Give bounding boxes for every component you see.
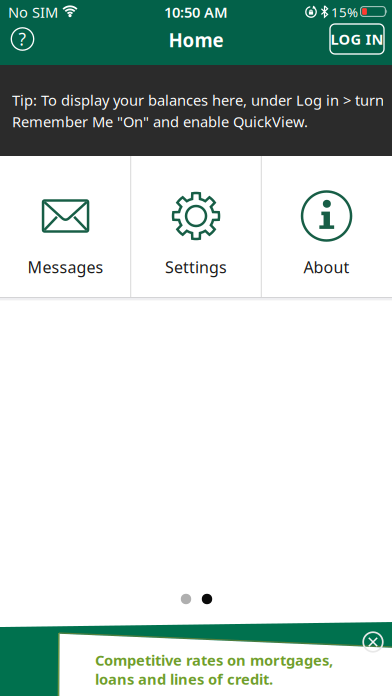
staticText: Competitive rates on mortgages,	[95, 650, 333, 670]
staticText: Settings	[165, 256, 227, 278]
staticText: About	[304, 256, 350, 278]
staticText: 15%	[331, 3, 358, 21]
staticText: loans and lines of credit.	[95, 669, 273, 689]
button[interactable]: LOG IN	[330, 24, 384, 54]
staticText: Messages	[27, 256, 103, 278]
staticText: Home	[168, 28, 223, 52]
staticText: 10:50 AM	[164, 2, 228, 22]
button[interactable]: About	[261, 156, 392, 297]
button[interactable]: Settings	[131, 156, 261, 297]
staticText: Remember Me "On" and enable QuickView.	[12, 112, 308, 131]
staticText: LOG IN	[330, 29, 383, 49]
button[interactable]: Messages	[0, 156, 131, 297]
button[interactable]: Help	[10, 27, 34, 51]
staticText: Tip: To display your balances here, unde…	[12, 90, 384, 110]
staticText: No SIM	[8, 2, 58, 22]
button[interactable]: Close	[361, 630, 385, 654]
staticText: ?	[18, 27, 26, 50]
